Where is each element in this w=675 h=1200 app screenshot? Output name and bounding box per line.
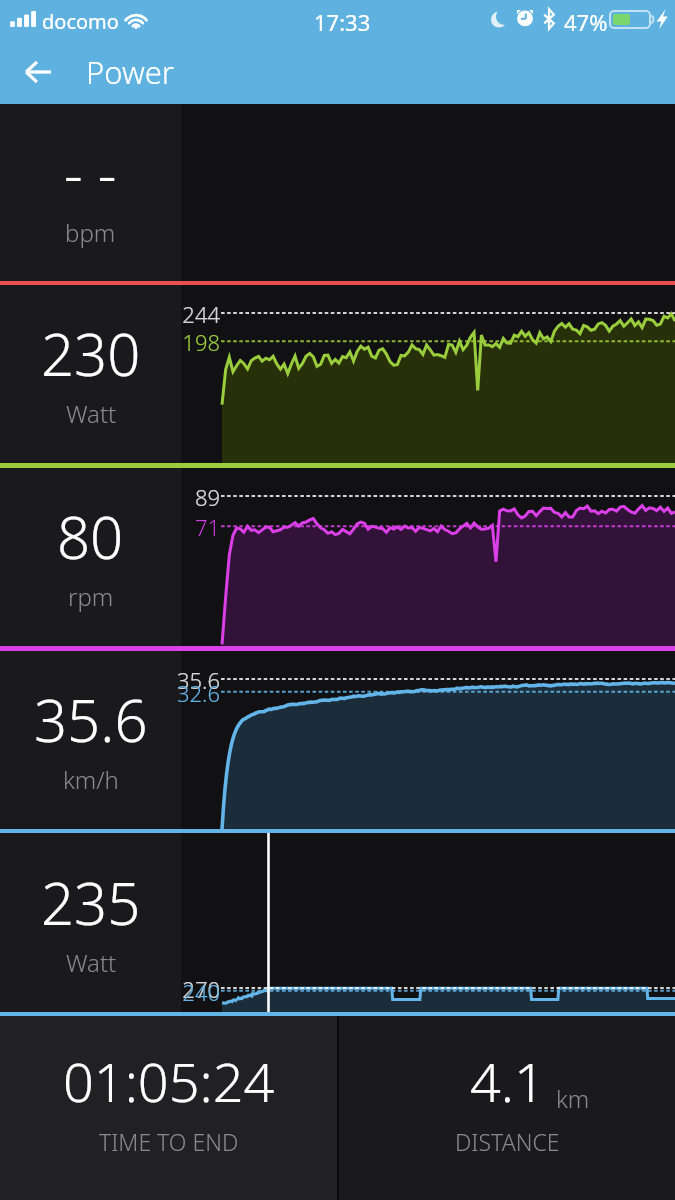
staticText: 35.6	[120, 665, 220, 695]
staticText: bpm	[65, 216, 116, 249]
staticText: rpm	[68, 580, 114, 613]
staticText: 4.1	[470, 1044, 545, 1118]
staticText: 35.6	[34, 680, 148, 759]
staticText: DISTANCE	[455, 1126, 560, 1157]
staticText: 71	[120, 512, 220, 542]
staticText: docomo	[42, 8, 119, 35]
staticText: 198	[120, 327, 220, 357]
staticText: 244	[120, 299, 220, 329]
button[interactable]: 4.1	[339, 1016, 675, 1200]
staticText: 230	[41, 314, 141, 393]
staticText: 47%	[564, 7, 608, 37]
staticText: 32.6	[120, 678, 220, 708]
staticText: 80	[57, 497, 124, 576]
button[interactable]: 35.6	[0, 651, 181, 829]
staticText: km	[556, 1082, 590, 1115]
button[interactable]: 235	[0, 833, 181, 1012]
button[interactable]: 80	[0, 468, 181, 646]
staticText: Watt	[66, 397, 117, 430]
button[interactable]: - -	[0, 104, 181, 281]
button[interactable]: Back	[12, 46, 64, 98]
staticText: 89	[120, 482, 220, 512]
staticText: 17:33	[314, 7, 371, 37]
button[interactable]: 01:05:24	[0, 1016, 337, 1200]
staticText: 240	[120, 977, 220, 1007]
button[interactable]: 230	[0, 285, 181, 463]
staticText: 270	[120, 974, 220, 1004]
staticText: TIME TO END	[99, 1126, 239, 1157]
staticText: 235	[41, 863, 141, 942]
staticText: Watt	[66, 946, 117, 979]
staticText: km/h	[63, 763, 119, 796]
staticText: Power	[86, 51, 175, 93]
staticText: - -	[64, 133, 117, 212]
staticText: 01:05:24	[63, 1044, 275, 1118]
